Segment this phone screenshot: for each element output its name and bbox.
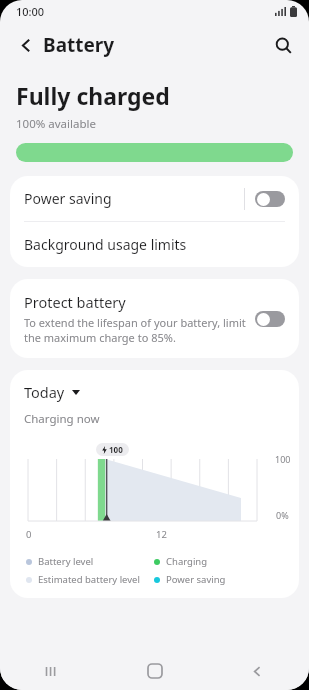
staticText: 0 — [26, 528, 32, 541]
staticText: 12 — [156, 528, 167, 541]
button[interactable]: Home — [103, 652, 206, 690]
button[interactable]: Back — [6, 25, 46, 65]
button[interactable]: Toggle — [255, 191, 285, 207]
button[interactable]: Power saving — [10, 176, 299, 221]
staticText: 100% available — [16, 116, 96, 132]
staticText: Fully charged — [16, 80, 170, 111]
button[interactable]: Back — [206, 652, 309, 690]
staticText: Power saving — [166, 573, 226, 586]
staticText: Estimated battery level — [38, 573, 140, 586]
button[interactable]: Protect battery — [10, 279, 299, 358]
staticText: Battery level — [38, 555, 94, 568]
staticText: Charging — [166, 555, 208, 568]
button[interactable]: Background usage limits — [10, 222, 299, 267]
staticText: Today — [24, 382, 65, 402]
staticText: Protect battery — [24, 292, 126, 312]
staticText: To extend the lifespan of your battery, … — [24, 315, 247, 345]
button[interactable]: Search — [263, 25, 303, 65]
button[interactable]: Today — [24, 382, 80, 402]
staticText: Power saving — [24, 189, 244, 208]
staticText: Background usage limits — [24, 235, 187, 254]
staticText: 100 — [275, 453, 291, 465]
button[interactable]: Toggle — [255, 311, 285, 327]
staticText: 10:00 — [16, 4, 45, 19]
button[interactable]: Recent apps — [0, 652, 103, 690]
staticText: 0% — [276, 509, 289, 521]
staticText: Charging now — [24, 411, 100, 427]
staticText: 100 — [109, 444, 123, 455]
staticText: Battery — [43, 32, 115, 58]
